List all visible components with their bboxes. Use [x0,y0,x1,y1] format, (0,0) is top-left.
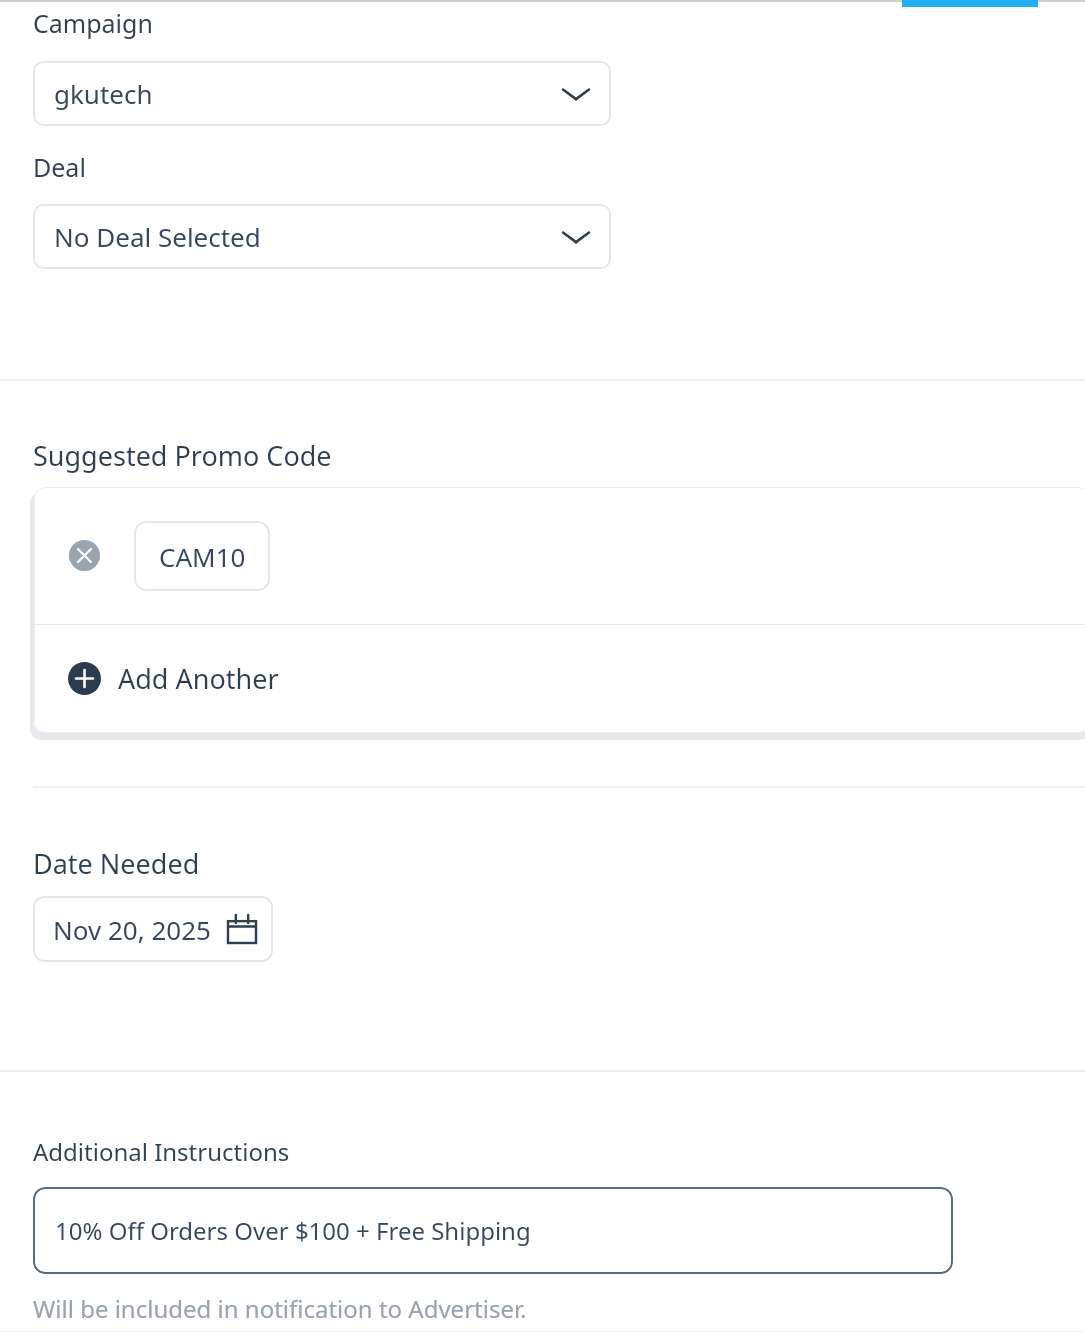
staticText: CAM10 [159,539,246,574]
staticText: Additional Instructions [33,1135,290,1168]
button[interactable]: Deal dropdown [33,204,611,269]
button[interactable]: Pick date needed [33,896,273,962]
button[interactable]: Remove promo code [69,540,100,571]
button[interactable]: Campaign dropdown [33,61,611,126]
staticText: Will be included in notification to Adve… [33,1292,527,1325]
button[interactable]: CAM10 [134,521,270,591]
staticText: Deal [33,150,86,184]
button[interactable]: Add Another [34,625,1085,732]
button[interactable]: 10% Off Orders Over $100 + Free Shipping [33,1187,953,1274]
staticText: Add Another [118,660,279,697]
staticText: Suggested Promo Code [33,437,332,474]
staticText: gkutech [54,76,153,111]
staticText: 10% Off Orders Over $100 + Free Shipping [55,1214,531,1247]
staticText: Date Needed [33,845,200,882]
staticText: No Deal Selected [54,219,261,254]
staticText: Nov 20, 2025 [53,912,211,947]
staticText: Campaign [33,6,153,40]
